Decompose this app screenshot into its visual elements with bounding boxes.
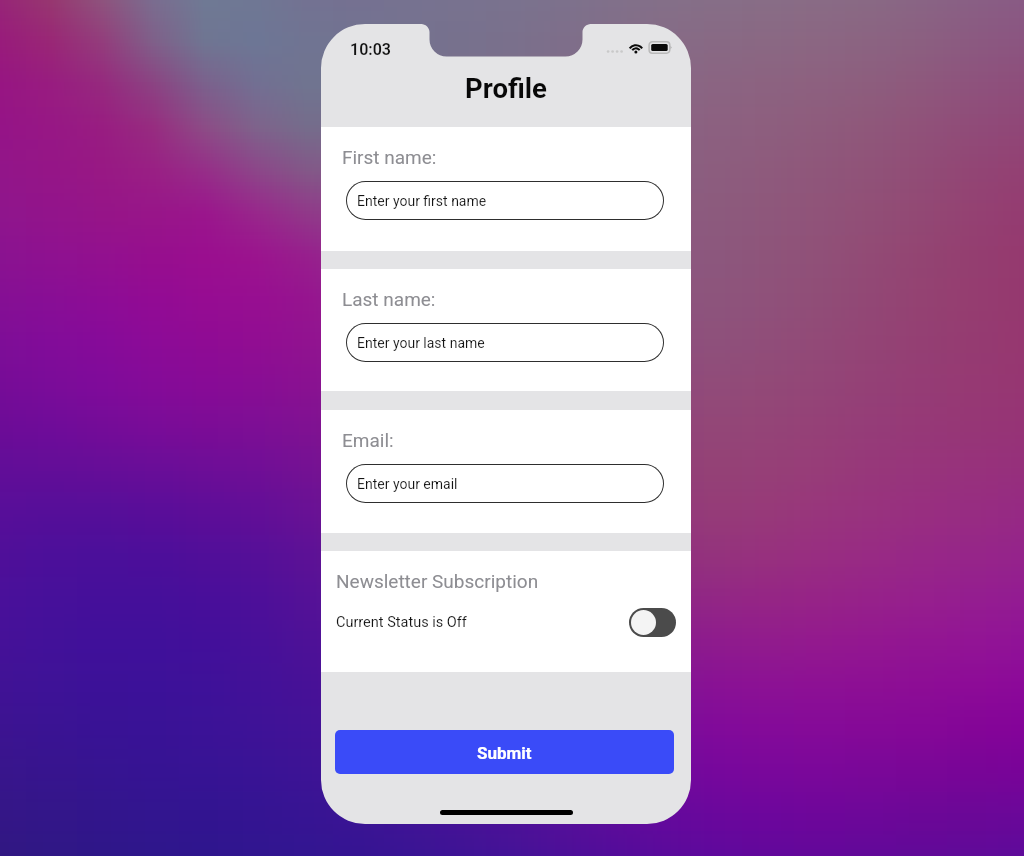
staticText: Newsletter Subscription (336, 570, 539, 592)
staticText: Email: (342, 429, 394, 451)
staticText: Last name: (342, 288, 436, 310)
staticText: 10:03 (350, 40, 391, 59)
button[interactable]: Enter your first name (346, 181, 664, 220)
staticText: Enter your last name (357, 335, 485, 351)
button[interactable]: Enter your last name (346, 323, 664, 362)
staticText: Current Status is Off (336, 614, 467, 631)
button[interactable]: Enter your email (346, 464, 664, 503)
staticText: Submit (477, 743, 532, 763)
button[interactable]: Current Status is Off (336, 600, 676, 644)
staticText: Enter your email (357, 476, 458, 492)
button[interactable]: Submit (335, 730, 674, 774)
staticText: Enter your first name (357, 193, 487, 209)
staticText: Profile (465, 72, 547, 104)
staticText: First name: (342, 146, 437, 168)
other: Status icons (605, 40, 675, 58)
